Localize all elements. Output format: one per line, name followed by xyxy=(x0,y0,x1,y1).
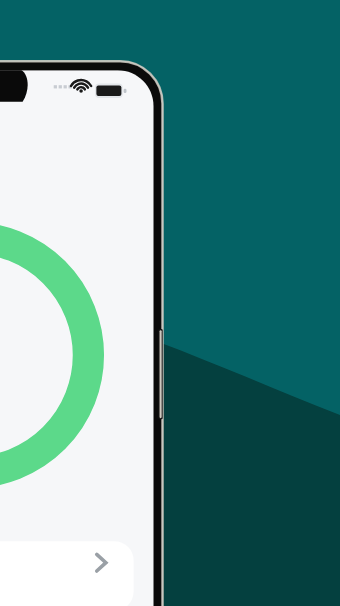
button[interactable]: Open details xyxy=(0,541,134,606)
